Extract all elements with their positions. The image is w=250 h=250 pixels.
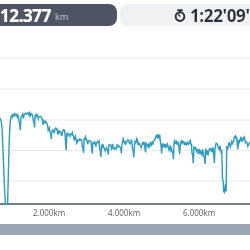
staticText: 12.377 — [0, 4, 51, 25]
button[interactable]: Duration — [120, 4, 250, 26]
staticText: 6.000km — [183, 207, 216, 218]
other: Duration — [174, 9, 186, 21]
button[interactable]: 12.377 — [0, 4, 117, 26]
staticText: 4.000km — [108, 207, 141, 218]
staticText: km — [55, 10, 69, 22]
staticText: 1:22'09" — [190, 4, 250, 26]
staticText: 2.000km — [33, 207, 66, 218]
